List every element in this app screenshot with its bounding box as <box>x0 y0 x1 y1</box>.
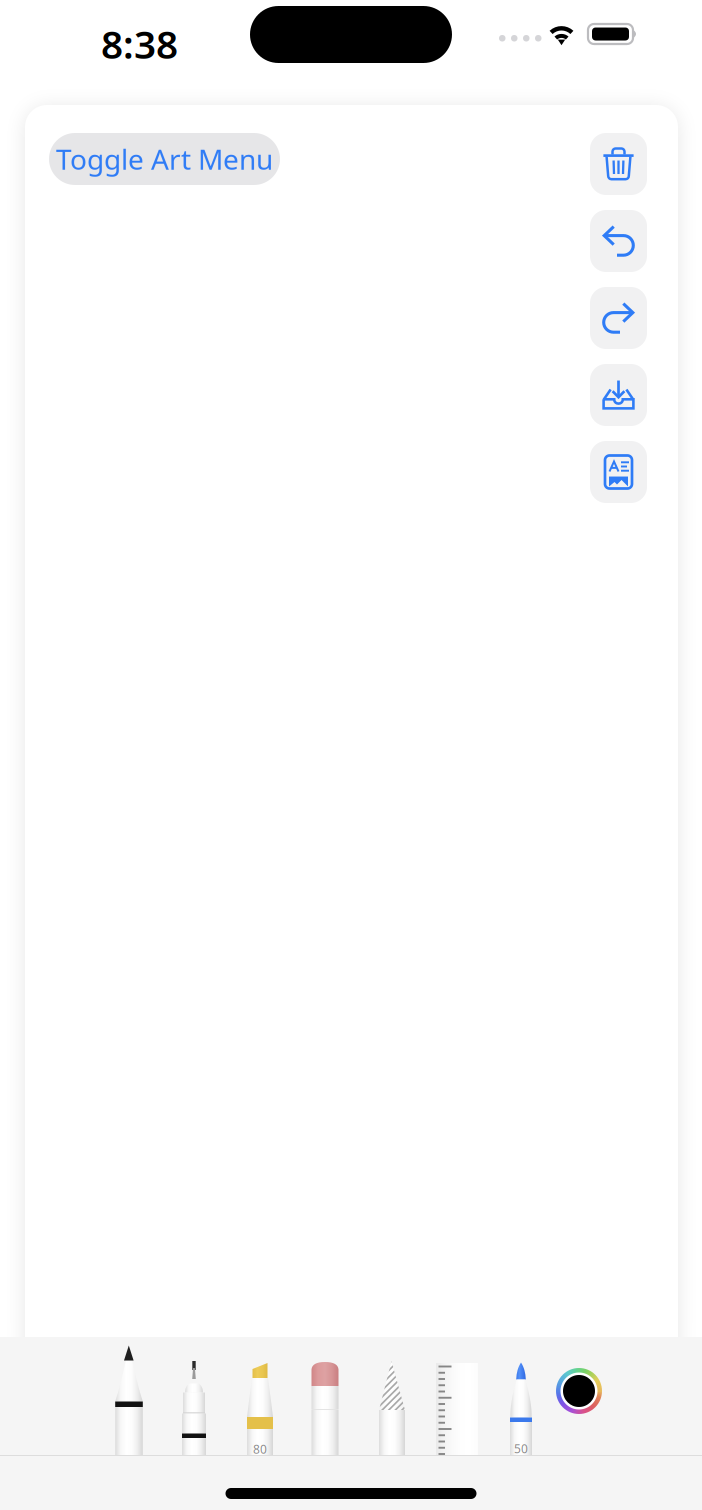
button[interactable]: Crayon <box>304 1337 346 1455</box>
button[interactable]: Toggle Art Menu <box>49 133 280 185</box>
button[interactable]: Redo <box>590 287 647 349</box>
button[interactable]: Document <box>590 441 647 503</box>
button[interactable]: Undo <box>590 210 647 272</box>
button[interactable]: Eraser <box>371 1337 413 1455</box>
staticText: 8:38 <box>101 18 178 69</box>
button[interactable]: Pen <box>173 1337 215 1455</box>
staticText: Toggle Art Menu <box>56 140 273 178</box>
button[interactable]: Ruler <box>436 1337 478 1455</box>
button[interactable]: Pencil <box>108 1337 150 1455</box>
staticText: 50 <box>514 1440 528 1456</box>
button[interactable]: Highlighter <box>239 1337 281 1455</box>
button[interactable]: Marker <box>500 1337 542 1455</box>
button[interactable]: Colour <box>558 1332 600 1450</box>
button[interactable]: Import <box>590 364 647 426</box>
staticText: 80 <box>253 1441 267 1457</box>
button[interactable]: Delete <box>590 133 647 195</box>
